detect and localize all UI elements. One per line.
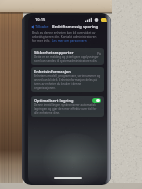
staticText: Denne innstillingen synkroniserer automa… — [34, 103, 101, 115]
staticText: 10:15 — [35, 17, 46, 22]
staticText: Enhetsinformasjon — [34, 69, 71, 74]
button[interactable]: Optimalisert lagring — [31, 96, 104, 117]
button[interactable]: Sikkerhetsrapporter — [31, 48, 104, 65]
staticText: På — [97, 51, 101, 55]
staticText: arbeidsgiveren din. Kontakt administrato… — [32, 35, 97, 39]
button[interactable]: Tilbake — [31, 24, 49, 29]
staticText: Sikkerhetsrapporter — [34, 50, 74, 55]
staticText: Dette er en melding og ytterligere opply… — [34, 55, 101, 63]
button[interactable]: Les mer om personvern — [52, 39, 87, 43]
staticText: Bedriftsmessig sporing — [52, 24, 99, 29]
button[interactable]: Toggle optimized storage — [92, 98, 101, 103]
staticText: Enhetens modell, programvare, serienumme… — [34, 74, 101, 90]
staticText: Bruk av denne enheten kan bli overvåket … — [32, 31, 96, 35]
staticText: for mer info. — [32, 39, 52, 43]
button[interactable]: Enhetsinformasjon — [31, 67, 104, 92]
staticText: Optimalisert lagring — [34, 98, 74, 103]
staticText: Tilbake — [35, 24, 49, 29]
